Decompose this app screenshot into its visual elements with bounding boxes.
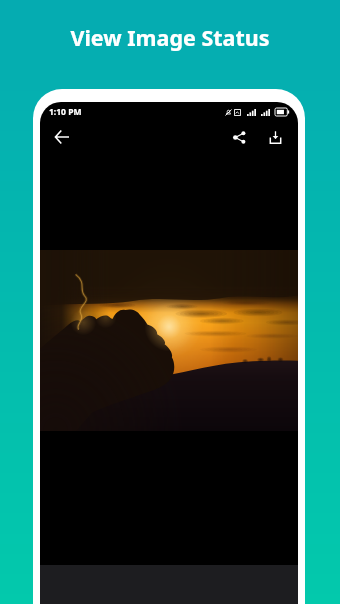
button[interactable]: Back	[48, 123, 76, 151]
staticText: 1:10 PM	[49, 106, 82, 118]
button[interactable]: Download	[261, 123, 289, 151]
button[interactable]: Share	[225, 123, 253, 151]
staticText: View Image Status	[0, 23, 340, 52]
